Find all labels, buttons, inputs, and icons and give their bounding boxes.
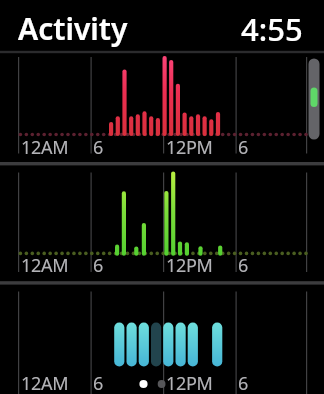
staticText: 6 <box>93 253 103 278</box>
staticText: 12PM <box>166 371 213 394</box>
staticText: 6 <box>238 253 248 278</box>
staticText: 12AM <box>21 253 69 278</box>
staticText: 12PM <box>166 253 213 278</box>
button[interactable] <box>0 288 324 394</box>
staticText: 6 <box>93 371 103 394</box>
staticText: 4:55 <box>241 8 303 50</box>
staticText: 12AM <box>21 371 69 394</box>
staticText: 6 <box>93 135 103 160</box>
staticText: 12AM <box>21 135 69 160</box>
staticText: 6 <box>238 135 248 160</box>
button[interactable] <box>0 166 324 285</box>
button[interactable] <box>0 53 324 163</box>
staticText: Activity <box>18 8 128 49</box>
staticText: 6 <box>238 371 248 394</box>
staticText: 12PM <box>166 135 213 160</box>
